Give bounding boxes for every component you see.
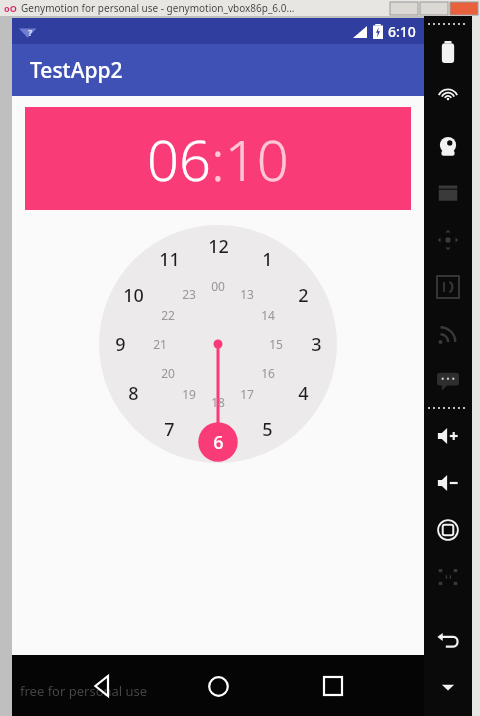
button[interactable]: 19 bbox=[174, 379, 204, 409]
staticText: 1 bbox=[262, 247, 273, 272]
button[interactable]: 4 bbox=[288, 378, 318, 408]
button[interactable]: More bbox=[424, 663, 472, 710]
button[interactable]: Window control bbox=[420, 2, 448, 15]
staticText: 17 bbox=[240, 386, 254, 402]
staticText: 12 bbox=[208, 234, 229, 259]
staticText: 15 bbox=[269, 336, 283, 352]
button[interactable]: 22 bbox=[153, 300, 183, 330]
button[interactable]: 12 bbox=[203, 231, 233, 261]
staticText: 10 bbox=[123, 283, 144, 308]
button[interactable]: D-pad bbox=[424, 216, 472, 263]
button[interactable]: Recent apps bbox=[309, 662, 357, 710]
button[interactable]: 2 bbox=[288, 280, 318, 310]
staticText: 6 bbox=[213, 430, 224, 455]
button[interactable]: 8 bbox=[118, 378, 148, 408]
button[interactable]: 3 bbox=[301, 329, 331, 359]
button[interactable]: Volume up bbox=[424, 412, 472, 459]
staticText: 20 bbox=[161, 365, 175, 381]
staticText: 23 bbox=[182, 286, 196, 302]
staticText: 3 bbox=[311, 332, 322, 357]
staticText: :10 bbox=[211, 121, 289, 197]
staticText: 06 bbox=[147, 121, 211, 197]
staticText: ? bbox=[28, 26, 33, 38]
button[interactable]: 13 bbox=[232, 279, 262, 309]
staticText: 19 bbox=[182, 386, 196, 402]
staticText: 14 bbox=[261, 307, 275, 323]
staticText: oO bbox=[4, 2, 17, 14]
staticText: 00 bbox=[211, 278, 225, 294]
button[interactable]: Home bbox=[194, 662, 242, 710]
button[interactable]: 10 bbox=[118, 280, 148, 310]
button[interactable]: Messages bbox=[424, 357, 472, 404]
staticText: free for personal use bbox=[20, 682, 148, 700]
button[interactable]: 16 bbox=[253, 358, 283, 388]
staticText: 2 bbox=[298, 283, 309, 308]
button[interactable]: 9 bbox=[105, 329, 135, 359]
staticText: 9 bbox=[115, 332, 126, 357]
button[interactable]: Volume down bbox=[424, 459, 472, 506]
staticText: 13 bbox=[240, 286, 254, 302]
button[interactable]: 6 bbox=[203, 427, 233, 457]
button[interactable]: 06 bbox=[25, 107, 411, 210]
button[interactable]: 17 bbox=[232, 379, 262, 409]
button[interactable]: Camera bbox=[424, 122, 472, 169]
button[interactable]: GPS bbox=[424, 75, 472, 122]
button[interactable]: 11 bbox=[154, 244, 184, 274]
staticText: 11 bbox=[159, 247, 180, 272]
button[interactable]: 20 bbox=[153, 358, 183, 388]
button[interactable]: Identifiers bbox=[424, 263, 472, 310]
button[interactable]: Scale 1:1 bbox=[424, 553, 472, 600]
staticText: 8 bbox=[128, 381, 139, 406]
staticText: 4 bbox=[298, 381, 309, 406]
staticText: TestApp2 bbox=[30, 56, 123, 85]
button[interactable]: Clock dial hour picker bbox=[99, 225, 337, 463]
button[interactable]: Back bbox=[79, 662, 127, 710]
button[interactable]: 18 bbox=[203, 387, 233, 417]
staticText: 16 bbox=[261, 365, 275, 381]
button[interactable]: Back bbox=[424, 616, 472, 663]
staticText: 5 bbox=[262, 417, 273, 442]
button[interactable]: Battery bbox=[424, 28, 472, 75]
staticText: 21 bbox=[153, 336, 167, 352]
button[interactable]: 1 bbox=[252, 244, 282, 274]
button[interactable]: Window control bbox=[390, 2, 418, 15]
staticText: 7 bbox=[164, 417, 175, 442]
button[interactable]: Network bbox=[424, 310, 472, 357]
button[interactable]: 15 bbox=[261, 329, 291, 359]
button[interactable]: 5 bbox=[252, 414, 282, 444]
button[interactable]: Window control bbox=[450, 2, 478, 15]
button[interactable]: 14 bbox=[253, 300, 283, 330]
button[interactable]: Video bbox=[424, 169, 472, 216]
staticText: 6:10 bbox=[388, 22, 416, 41]
button[interactable]: 00 bbox=[203, 271, 233, 301]
staticText: 18 bbox=[211, 394, 225, 410]
button[interactable]: 7 bbox=[154, 414, 184, 444]
staticText: Genymotion for personal use - genymotion… bbox=[21, 1, 295, 15]
staticText: 22 bbox=[161, 307, 175, 323]
button[interactable]: 21 bbox=[145, 329, 175, 359]
button[interactable]: 23 bbox=[174, 279, 204, 309]
button[interactable]: Rotate bbox=[424, 506, 472, 553]
button[interactable]: TestApp2 bbox=[12, 44, 424, 96]
